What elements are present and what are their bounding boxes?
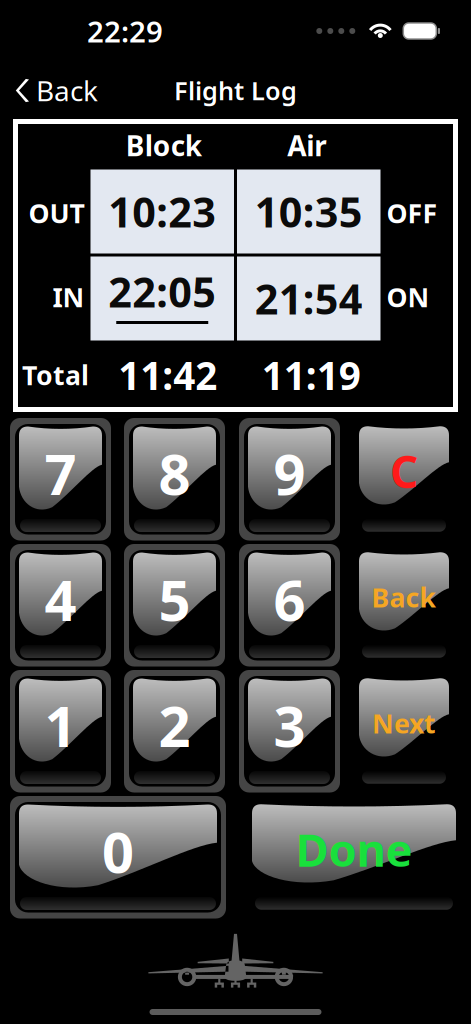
staticText: OFF <box>386 195 437 231</box>
staticText: Block <box>126 127 202 164</box>
staticText: Back <box>36 72 98 109</box>
staticText: Done <box>295 819 412 879</box>
staticText: Air <box>287 127 327 164</box>
staticText: 21:54 <box>255 271 363 326</box>
button[interactable]: Back <box>0 66 98 115</box>
button[interactable]: 6 <box>239 544 340 666</box>
staticText: 11:42 <box>118 349 217 401</box>
staticText: Total <box>22 357 89 393</box>
staticText: 8 <box>158 436 190 510</box>
button[interactable]: 7 <box>10 418 111 540</box>
staticText: OUT <box>28 195 84 231</box>
staticText: 5 <box>158 562 190 636</box>
button[interactable]: 9 <box>239 418 340 540</box>
staticText: 3 <box>273 688 305 762</box>
button[interactable]: Back <box>359 551 449 659</box>
button[interactable]: 2 <box>124 670 225 792</box>
staticText: 22:05 <box>108 264 216 319</box>
button[interactable]: 3 <box>239 670 340 792</box>
staticText: 2 <box>158 688 190 762</box>
staticText: 10:35 <box>255 184 363 239</box>
staticText: Flight Log <box>174 74 297 107</box>
button[interactable]: 4 <box>10 544 111 666</box>
staticText: IN <box>52 279 84 315</box>
staticText: 7 <box>44 436 76 510</box>
staticText: C <box>390 442 418 500</box>
staticText: 6 <box>273 562 305 636</box>
button[interactable]: Done <box>252 803 456 911</box>
staticText: 9 <box>273 436 305 510</box>
staticText: 22:29 <box>87 11 163 50</box>
staticText: 10:23 <box>108 184 216 239</box>
staticText: ON <box>386 279 429 315</box>
button[interactable]: 1 <box>10 670 111 792</box>
button[interactable]: Next <box>359 677 449 785</box>
button[interactable]: 5 <box>124 544 225 666</box>
staticText: Next <box>372 705 436 741</box>
button[interactable]: C <box>359 425 449 533</box>
staticText: 1 <box>44 688 76 762</box>
button[interactable]: 0 <box>10 796 226 918</box>
staticText: Back <box>371 579 436 615</box>
staticText: 4 <box>44 562 76 636</box>
staticText: 0 <box>102 814 134 888</box>
button[interactable]: 8 <box>124 418 225 540</box>
staticText: 11:19 <box>262 349 361 401</box>
